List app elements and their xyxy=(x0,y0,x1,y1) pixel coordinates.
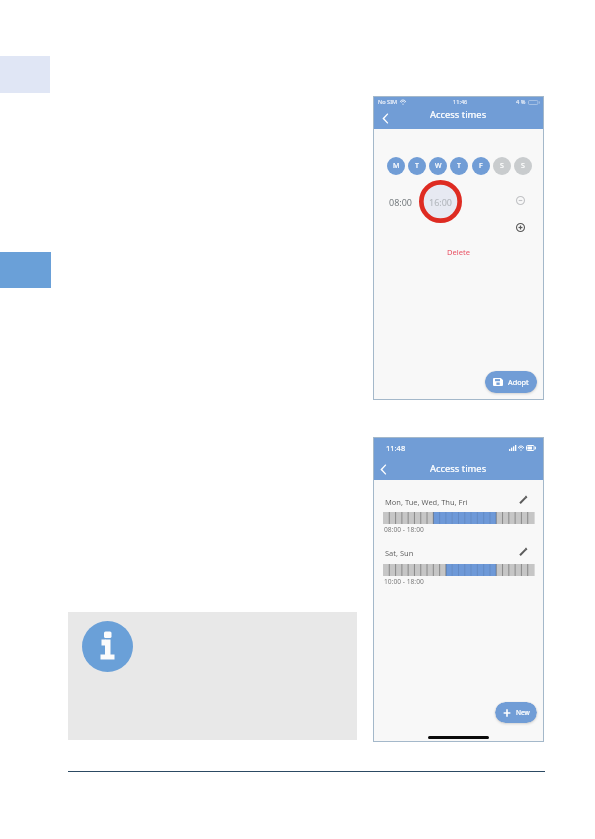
button[interactable]: 16:00 xyxy=(418,179,463,224)
button[interactable]: S xyxy=(514,157,532,175)
staticText: 16:00 xyxy=(429,196,453,208)
staticText: Access times xyxy=(430,462,487,475)
staticText: Adopt xyxy=(508,377,529,387)
staticText: M xyxy=(393,161,400,171)
button[interactable]: S xyxy=(493,157,511,175)
button[interactable]: Sat, Sun xyxy=(385,548,414,558)
button[interactable]: Back xyxy=(378,111,392,125)
staticText: 4 % xyxy=(516,98,526,106)
staticText: S xyxy=(500,161,504,171)
button[interactable]: Add time xyxy=(516,223,525,232)
button[interactable]: Information xyxy=(82,621,133,672)
button[interactable]: Back xyxy=(376,462,390,476)
staticText: New xyxy=(516,708,530,717)
button[interactable]: Edit xyxy=(517,546,529,558)
staticText: 11:46 xyxy=(453,98,468,106)
button[interactable]: Edit xyxy=(517,494,529,506)
staticText: No SIM xyxy=(378,98,398,106)
button[interactable]: W xyxy=(429,157,447,175)
button[interactable]: Adopt xyxy=(485,371,537,393)
staticText: 10:00 - 18:00 xyxy=(384,577,424,586)
staticText: Delete xyxy=(447,247,471,257)
button[interactable]: M xyxy=(387,157,405,175)
button[interactable]: T xyxy=(408,157,426,175)
staticText: S xyxy=(521,161,525,171)
button[interactable]: T xyxy=(450,157,468,175)
staticText: 08:00 - 18:00 xyxy=(384,525,424,534)
staticText: 11:48 xyxy=(386,443,406,453)
button[interactable]: Delete xyxy=(373,246,544,257)
staticText: Access times xyxy=(430,108,487,121)
button[interactable]: F xyxy=(472,157,490,175)
staticText: W xyxy=(435,161,442,171)
staticText: T xyxy=(457,161,461,171)
button[interactable]: Remove time xyxy=(516,196,525,205)
button[interactable]: New xyxy=(495,702,537,723)
staticText: F xyxy=(479,161,483,171)
button[interactable]: Mon, Tue, Wed, Thu, Fri xyxy=(385,497,468,507)
staticText: T xyxy=(415,161,419,171)
button[interactable]: 08:00 xyxy=(389,196,413,208)
